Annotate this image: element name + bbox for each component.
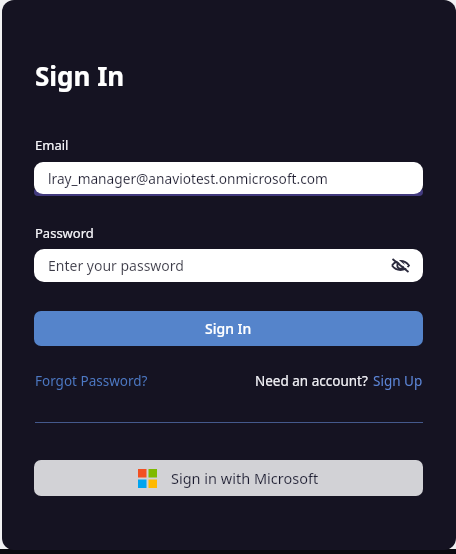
button[interactable]: lray_manager@anaviotest.onmicrosoft.com	[34, 162, 423, 194]
staticText: Sign In	[35, 58, 125, 93]
staticText: lray_manager@anaviotest.onmicrosoft.com	[48, 169, 328, 188]
staticText: Password	[35, 224, 94, 242]
button[interactable]: Sign in with Microsoft	[34, 460, 423, 496]
staticText: Email	[35, 136, 69, 154]
staticText: Sign In	[205, 319, 252, 338]
staticText: Need an account?	[255, 372, 368, 390]
button[interactable]: Sign In	[34, 311, 423, 346]
button[interactable]: Forgot Password?	[35, 372, 148, 390]
button[interactable]: Sign Up	[373, 372, 423, 390]
staticText: Enter your password	[48, 256, 184, 275]
button[interactable]: Enter your password	[34, 249, 423, 282]
staticText: Sign in with Microsoft	[171, 468, 319, 488]
